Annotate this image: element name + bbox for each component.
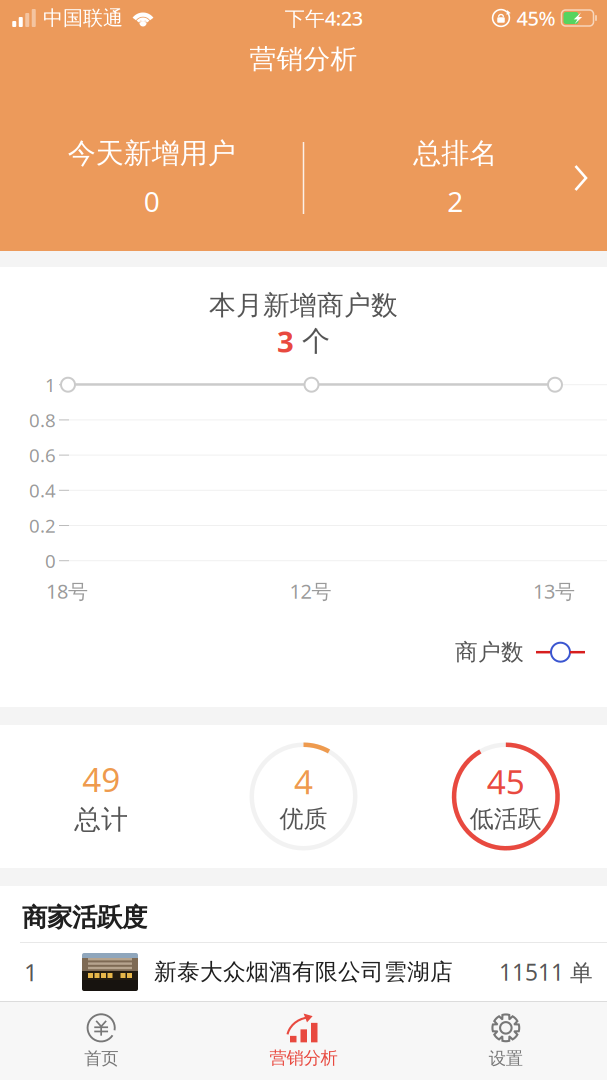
staticText: 中国联通 (43, 6, 123, 30)
staticText: 设置 (489, 1048, 523, 1069)
staticText: 新泰大众烟酒有限公司雲湖店 (154, 958, 453, 986)
staticText: 商户数 (455, 638, 524, 666)
staticText: 优质 (279, 804, 327, 834)
staticText: 低活跃 (470, 804, 542, 834)
staticText: 本月新增商户数 (209, 289, 398, 322)
staticText: 11511 单 (499, 957, 593, 987)
staticText: 1 (45, 372, 56, 397)
staticText: 0.2 (29, 513, 56, 538)
staticText: 4 (294, 759, 313, 803)
staticText: 营销分析 (269, 1047, 337, 1069)
staticText: 12号 (289, 578, 331, 604)
staticText: 1 (24, 956, 38, 988)
staticText: 下午4:23 (285, 5, 363, 31)
staticText: 18号 (46, 578, 88, 604)
staticText: 个 (302, 324, 330, 358)
staticText: 2 (447, 183, 463, 220)
staticText: 今天新增用户 (68, 136, 236, 171)
staticText: 0.8 (29, 407, 56, 432)
staticText: 0.4 (29, 478, 56, 503)
staticText: 总计 (74, 803, 128, 836)
staticText: 45 (487, 759, 525, 803)
staticText: 首页 (84, 1048, 118, 1069)
staticText: 营销分析 (249, 43, 357, 75)
staticText: 0 (45, 548, 56, 573)
button[interactable]: 1 (0, 943, 607, 1001)
staticText: 总排名 (413, 136, 497, 171)
staticText: 45% (516, 5, 555, 31)
staticText: 0 (144, 183, 160, 220)
staticText: 13号 (533, 578, 575, 604)
button[interactable]: 营销分析 (202, 1002, 405, 1080)
staticText: 3 (277, 322, 294, 361)
button[interactable]: 首页 (0, 1002, 202, 1080)
button[interactable]: 设置 (405, 1002, 607, 1080)
staticText: 0.6 (29, 443, 56, 467)
staticText: 商家活跃度 (22, 902, 147, 933)
staticText: 49 (82, 757, 120, 801)
